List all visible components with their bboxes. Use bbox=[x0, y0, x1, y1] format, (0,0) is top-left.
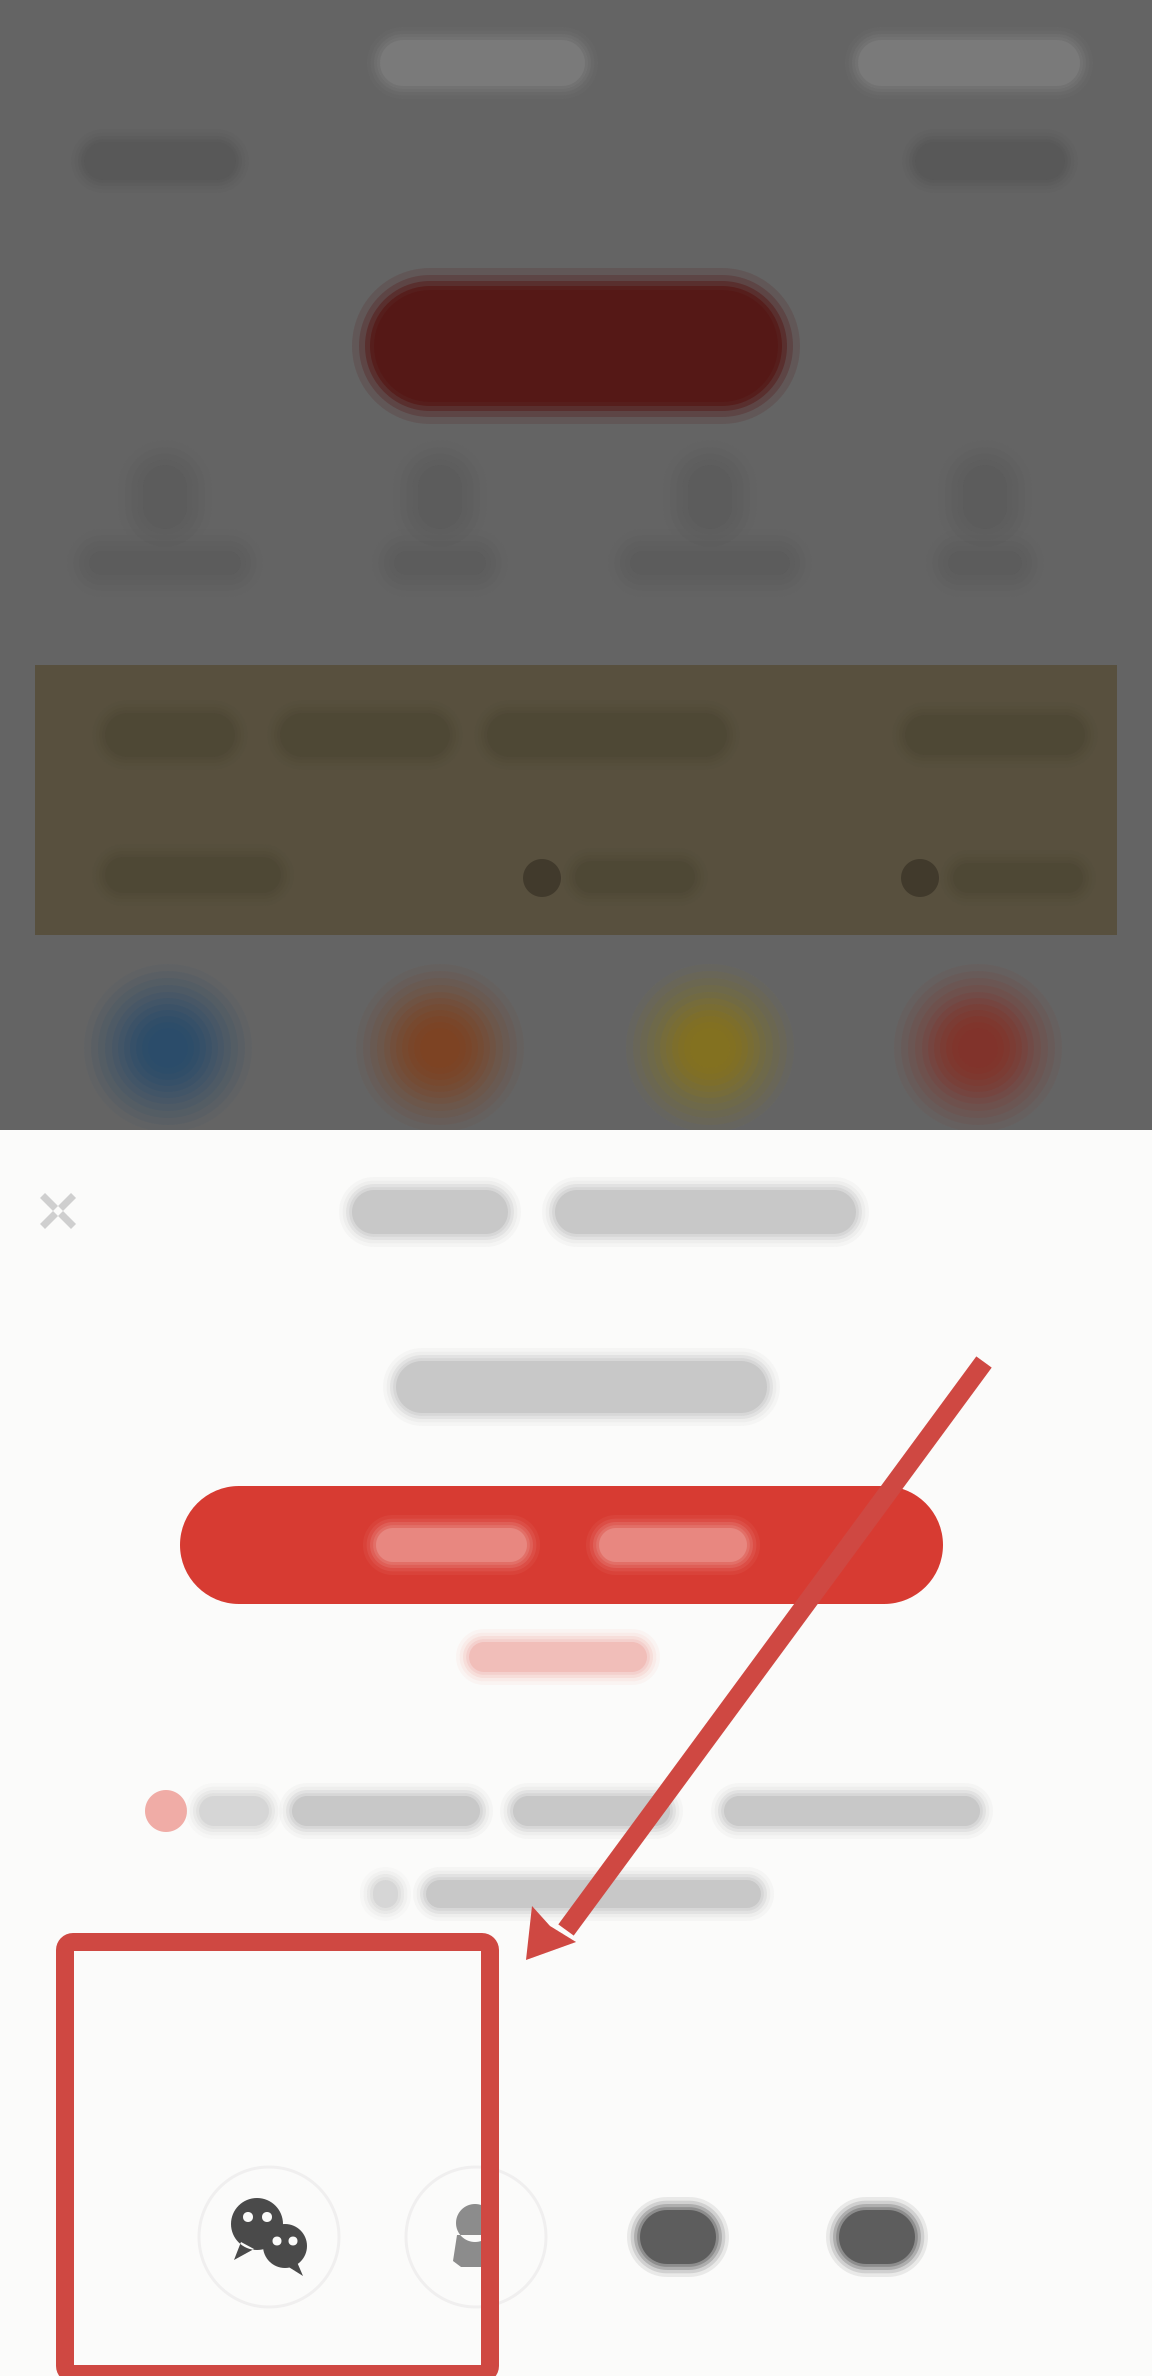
button[interactable]: Share to WeChat bbox=[189, 2147, 349, 2327]
button[interactable]: Share to QQ bbox=[396, 2147, 556, 2327]
button[interactable]: Copy link bbox=[797, 2147, 957, 2327]
button[interactable]: Share to Moments bbox=[598, 2147, 758, 2327]
button[interactable] bbox=[443, 1627, 673, 1687]
button[interactable] bbox=[180, 1486, 943, 1604]
button[interactable]: Close bbox=[10, 1163, 106, 1259]
